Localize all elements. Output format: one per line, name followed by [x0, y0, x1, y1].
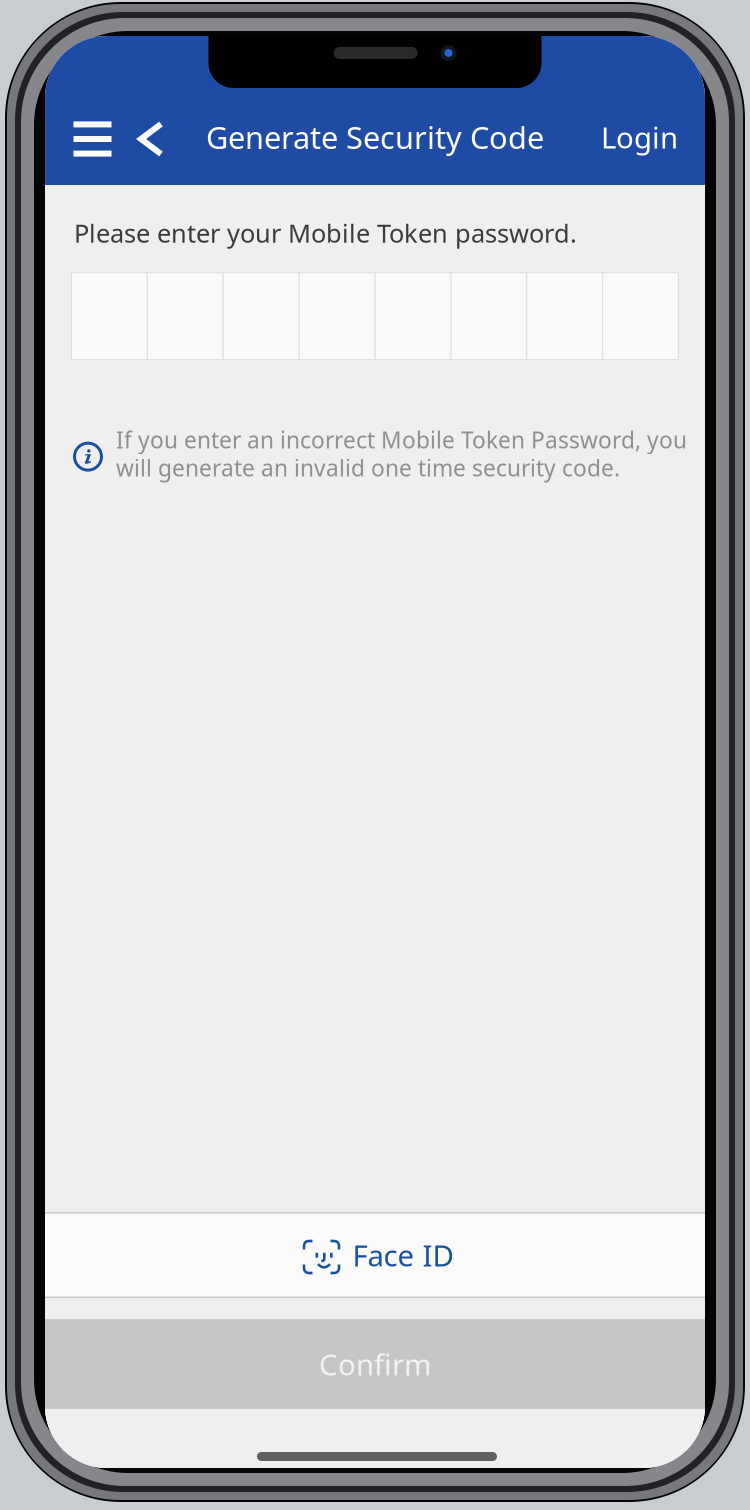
- button[interactable]: Password character 5: [375, 273, 451, 360]
- button[interactable]: Password character 1: [71, 273, 147, 360]
- button[interactable]: Password character 6: [451, 273, 527, 360]
- staticText: If you enter an incorrect Mobile Token P…: [116, 425, 687, 455]
- button[interactable]: Password character 4: [299, 273, 375, 360]
- button[interactable]: Password character 7: [527, 273, 603, 360]
- staticText: will generate an invalid one time securi…: [116, 453, 620, 483]
- staticText: Face ID: [352, 1235, 453, 1274]
- button[interactable]: Menu: [60, 97, 125, 177]
- button[interactable]: Face ID: [45, 1212, 705, 1298]
- staticText: Confirm: [319, 1344, 431, 1383]
- staticText: Generate Security Code: [206, 117, 544, 157]
- staticText: Login: [601, 117, 678, 156]
- button[interactable]: Confirm: [45, 1319, 705, 1409]
- staticText: Please enter your Mobile Token password.: [74, 216, 577, 250]
- button[interactable]: Password character 3: [223, 273, 299, 360]
- button[interactable]: Login: [588, 97, 691, 177]
- button[interactable]: Password character 2: [147, 273, 223, 360]
- button[interactable]: Back: [125, 97, 177, 177]
